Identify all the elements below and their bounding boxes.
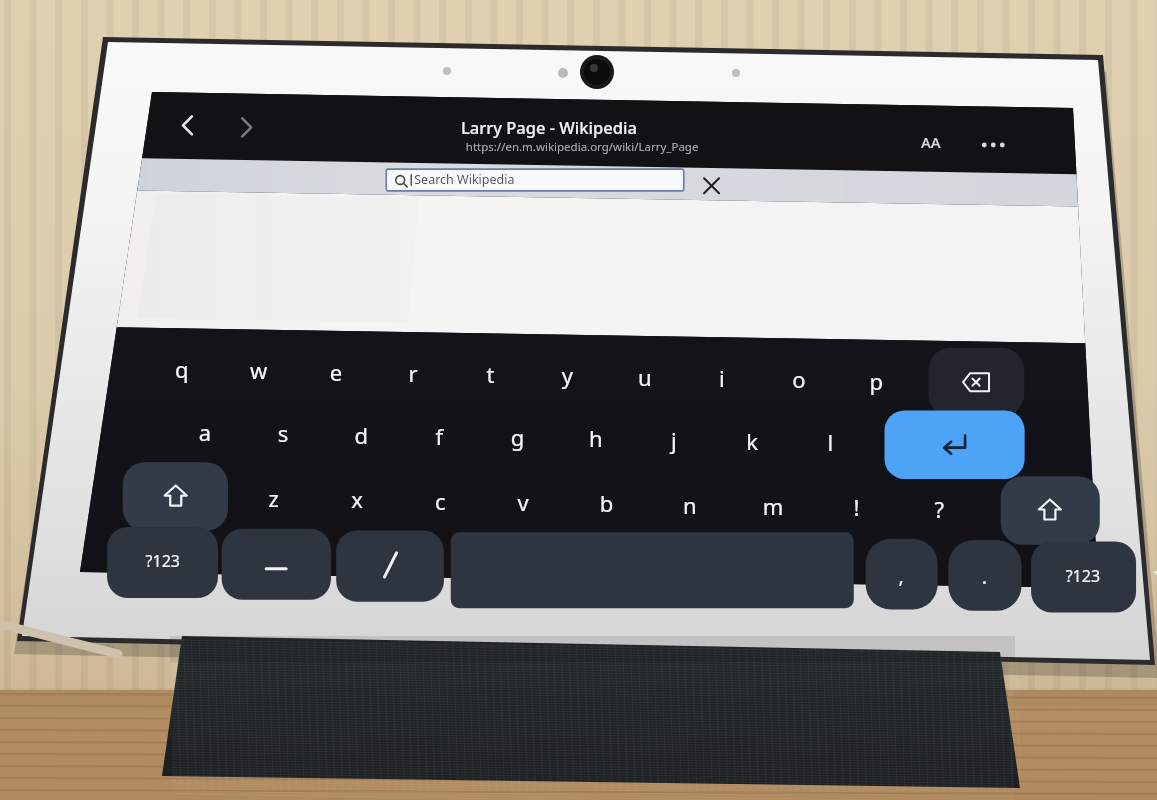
- button[interactable]: Smart display showing browser keyboard: [0, 0, 1157, 800]
